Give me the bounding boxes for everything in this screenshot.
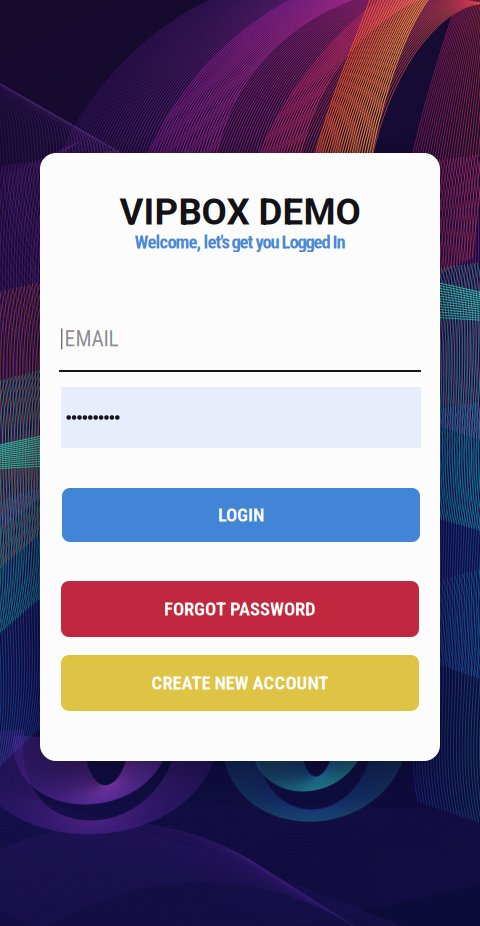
button[interactable]: CREATE NEW ACCOUNT	[61, 655, 419, 711]
staticText: CREATE NEW ACCOUNT	[151, 672, 328, 694]
staticText: LOGIN	[218, 504, 264, 526]
staticText: EMAIL	[64, 326, 118, 351]
staticText: FORGOT PASSWORD	[164, 598, 316, 620]
button[interactable]: LOGIN	[62, 488, 420, 542]
button[interactable]: FORGOT PASSWORD	[61, 581, 419, 637]
staticText: Welcome, let's get you Logged In	[134, 231, 345, 253]
staticText: VIPBOX DEMO	[119, 190, 360, 233]
